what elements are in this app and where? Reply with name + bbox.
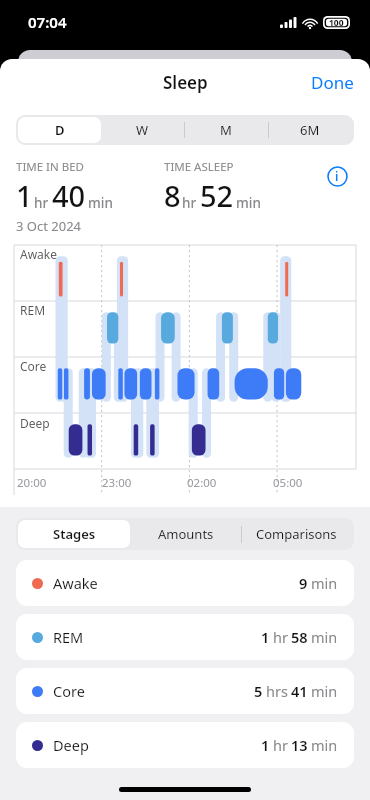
staticText: 58 bbox=[291, 627, 308, 647]
staticText: 41 bbox=[291, 681, 308, 701]
staticText: 40 bbox=[52, 176, 86, 215]
staticText: TIME IN BED bbox=[16, 159, 84, 175]
staticText: 6M bbox=[300, 121, 320, 139]
button[interactable]: Comparisons bbox=[241, 520, 352, 548]
staticText: REM bbox=[53, 627, 84, 647]
staticText: 20:00 bbox=[17, 475, 47, 491]
staticText: Amounts bbox=[158, 525, 214, 543]
staticText: 1 bbox=[261, 735, 270, 755]
staticText: W bbox=[136, 121, 149, 139]
button[interactable]: Core bbox=[16, 668, 354, 714]
button[interactable]: 6M bbox=[268, 117, 352, 143]
staticText: min bbox=[311, 681, 338, 701]
button[interactable]: Amounts bbox=[130, 520, 241, 548]
staticText: 13 bbox=[291, 735, 308, 755]
button[interactable]: W bbox=[101, 117, 184, 143]
staticText: Deep bbox=[53, 735, 89, 755]
staticText: Awake bbox=[53, 573, 98, 593]
staticText: REM bbox=[20, 302, 46, 318]
button[interactable]: Information bbox=[320, 159, 354, 193]
staticText: TIME ASLEEP bbox=[164, 159, 234, 175]
staticText: Awake bbox=[20, 246, 58, 262]
staticText: i bbox=[335, 168, 339, 184]
staticText: hrs bbox=[266, 681, 288, 701]
staticText: hr bbox=[182, 194, 197, 212]
staticText: 5 bbox=[254, 681, 263, 701]
staticText: min bbox=[236, 194, 261, 212]
staticText: 05:00 bbox=[273, 475, 303, 491]
staticText: Stages bbox=[53, 525, 96, 543]
button[interactable]: D bbox=[18, 117, 101, 143]
staticText: Sleep bbox=[163, 71, 208, 94]
staticText: min bbox=[311, 735, 338, 755]
button[interactable]: M bbox=[184, 117, 268, 143]
staticText: 02:00 bbox=[187, 475, 217, 491]
staticText: Done bbox=[311, 71, 354, 94]
button[interactable]: Awake bbox=[16, 560, 354, 606]
staticText: 52 bbox=[200, 176, 234, 215]
staticText: min bbox=[311, 573, 338, 593]
staticText: Core bbox=[20, 358, 47, 374]
button[interactable]: REM bbox=[16, 614, 354, 660]
staticText: 8 bbox=[164, 176, 181, 215]
button[interactable]: Stages bbox=[18, 520, 130, 548]
staticText: D bbox=[55, 121, 65, 139]
staticText: Core bbox=[53, 681, 85, 701]
staticText: 1 bbox=[16, 176, 33, 215]
staticText: 23:00 bbox=[102, 475, 132, 491]
staticText: hr bbox=[273, 735, 288, 755]
button[interactable]: Done bbox=[295, 65, 370, 100]
staticText: hr bbox=[273, 627, 288, 647]
button[interactable]: Deep bbox=[16, 722, 354, 768]
staticText: min bbox=[311, 627, 338, 647]
staticText: 3 Oct 2024 bbox=[16, 217, 82, 235]
staticText: Deep bbox=[20, 415, 50, 431]
staticText: hr bbox=[34, 194, 49, 212]
staticText: Comparisons bbox=[256, 525, 337, 543]
staticText: 1 bbox=[261, 627, 270, 647]
staticText: 07:04 bbox=[28, 12, 67, 32]
staticText: 9 bbox=[299, 573, 308, 593]
staticText: 100 bbox=[329, 17, 344, 29]
staticText: min bbox=[88, 194, 113, 212]
staticText: M bbox=[220, 121, 232, 139]
